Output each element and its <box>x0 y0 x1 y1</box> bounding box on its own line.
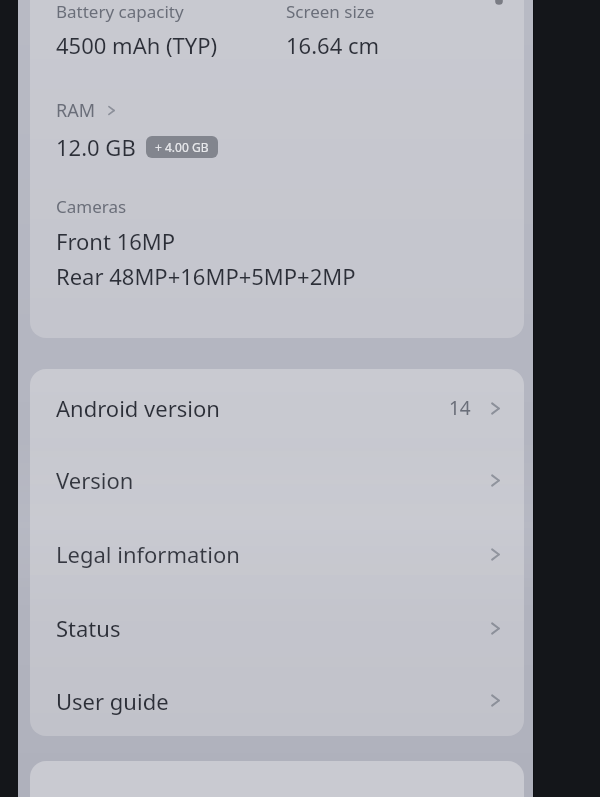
staticText: Cameras <box>56 195 127 218</box>
staticText: Rear 48MP+16MP+5MP+2MP <box>56 261 356 291</box>
staticText: 4500 mAh (TYP) <box>56 30 218 60</box>
button[interactable]: RAM <box>56 96 130 125</box>
staticText: 14 <box>449 395 471 421</box>
button[interactable]: Legal information <box>30 517 524 591</box>
staticText: 12.0 GB <box>56 132 136 162</box>
staticText: Status <box>56 613 121 643</box>
staticText: Android version <box>56 393 220 423</box>
staticText: RAM <box>56 98 96 123</box>
staticText: Version <box>56 465 134 495</box>
staticText: Front 16MP <box>56 226 176 256</box>
staticText: 16.64 cm <box>286 30 380 60</box>
staticText: User guide <box>56 686 169 716</box>
button[interactable]: Android version <box>30 369 524 443</box>
staticText: Screen size <box>286 0 375 23</box>
button[interactable]: Status <box>30 591 524 665</box>
button[interactable]: User guide <box>30 665 524 736</box>
staticText: Battery capacity <box>56 0 184 23</box>
button[interactable]: Version <box>30 443 524 517</box>
staticText: Legal information <box>56 539 240 569</box>
staticText: + 4.00 GB <box>155 139 209 155</box>
